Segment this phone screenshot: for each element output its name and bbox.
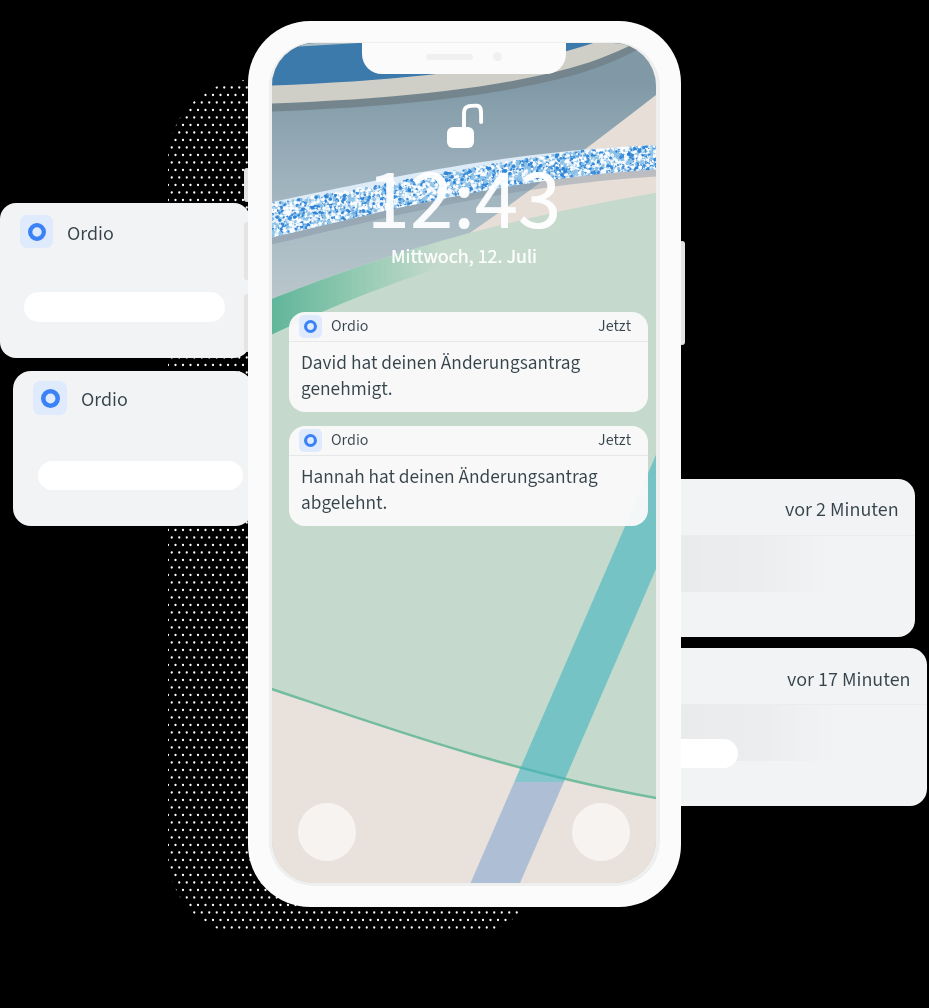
staticText: 12:43 [272, 139, 656, 263]
staticText: Ordio [67, 220, 114, 248]
button[interactable]: Ordio [289, 312, 648, 412]
button[interactable]: Ordio [0, 203, 250, 358]
staticText: Mittwoch, 12. Juli [272, 243, 656, 271]
button[interactable]: vor 2 Minuten [645, 479, 915, 637]
button[interactable]: Taschenlampe [298, 803, 356, 861]
staticText: vor 17 Minuten [787, 666, 911, 694]
button[interactable]: Kamera [572, 803, 630, 861]
button[interactable]: Ordio [289, 426, 648, 526]
staticText: Hannah hat deinen Änderungsantrag abgele… [301, 463, 598, 517]
staticText: Ordio [331, 429, 369, 452]
staticText: Ordio [331, 315, 369, 338]
staticText: vor 2 Minuten [785, 496, 899, 524]
button[interactable]: Ordio [13, 371, 253, 526]
staticText: Jetzt [598, 429, 632, 452]
staticText: Jetzt [598, 315, 632, 338]
staticText: David hat deinen Änderungsantrag genehmi… [301, 349, 581, 403]
button[interactable]: vor 17 Minuten [645, 648, 927, 806]
staticText: Ordio [81, 386, 128, 414]
